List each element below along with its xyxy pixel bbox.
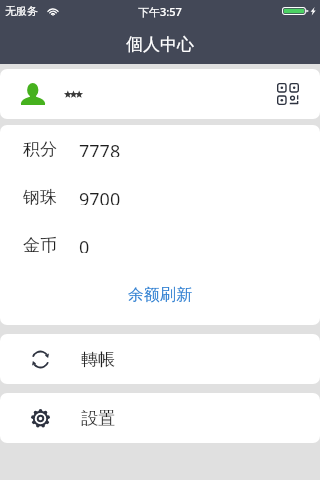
- staticText: 7778: [79, 139, 121, 157]
- button[interactable]: Scan QR code: [0, 69, 320, 119]
- staticText: 余额刷新: [128, 285, 192, 305]
- staticText: 积分: [23, 139, 57, 157]
- staticText: 金币: [23, 235, 57, 253]
- staticText: 无服务: [5, 4, 38, 18]
- button[interactable]: 轉帳: [0, 334, 320, 384]
- staticText: 钢珠: [23, 187, 57, 205]
- staticText: 設置: [81, 408, 115, 429]
- staticText: 下午3:57: [138, 4, 182, 19]
- staticText: 9700: [79, 187, 121, 205]
- button[interactable]: Scan QR code: [277, 83, 299, 105]
- button[interactable]: 余额刷新: [114, 278, 206, 312]
- button[interactable]: 設置: [0, 393, 320, 443]
- staticText: 個人中心: [126, 34, 194, 55]
- staticText: 轉帳: [81, 349, 115, 370]
- staticText: 0: [79, 235, 90, 253]
